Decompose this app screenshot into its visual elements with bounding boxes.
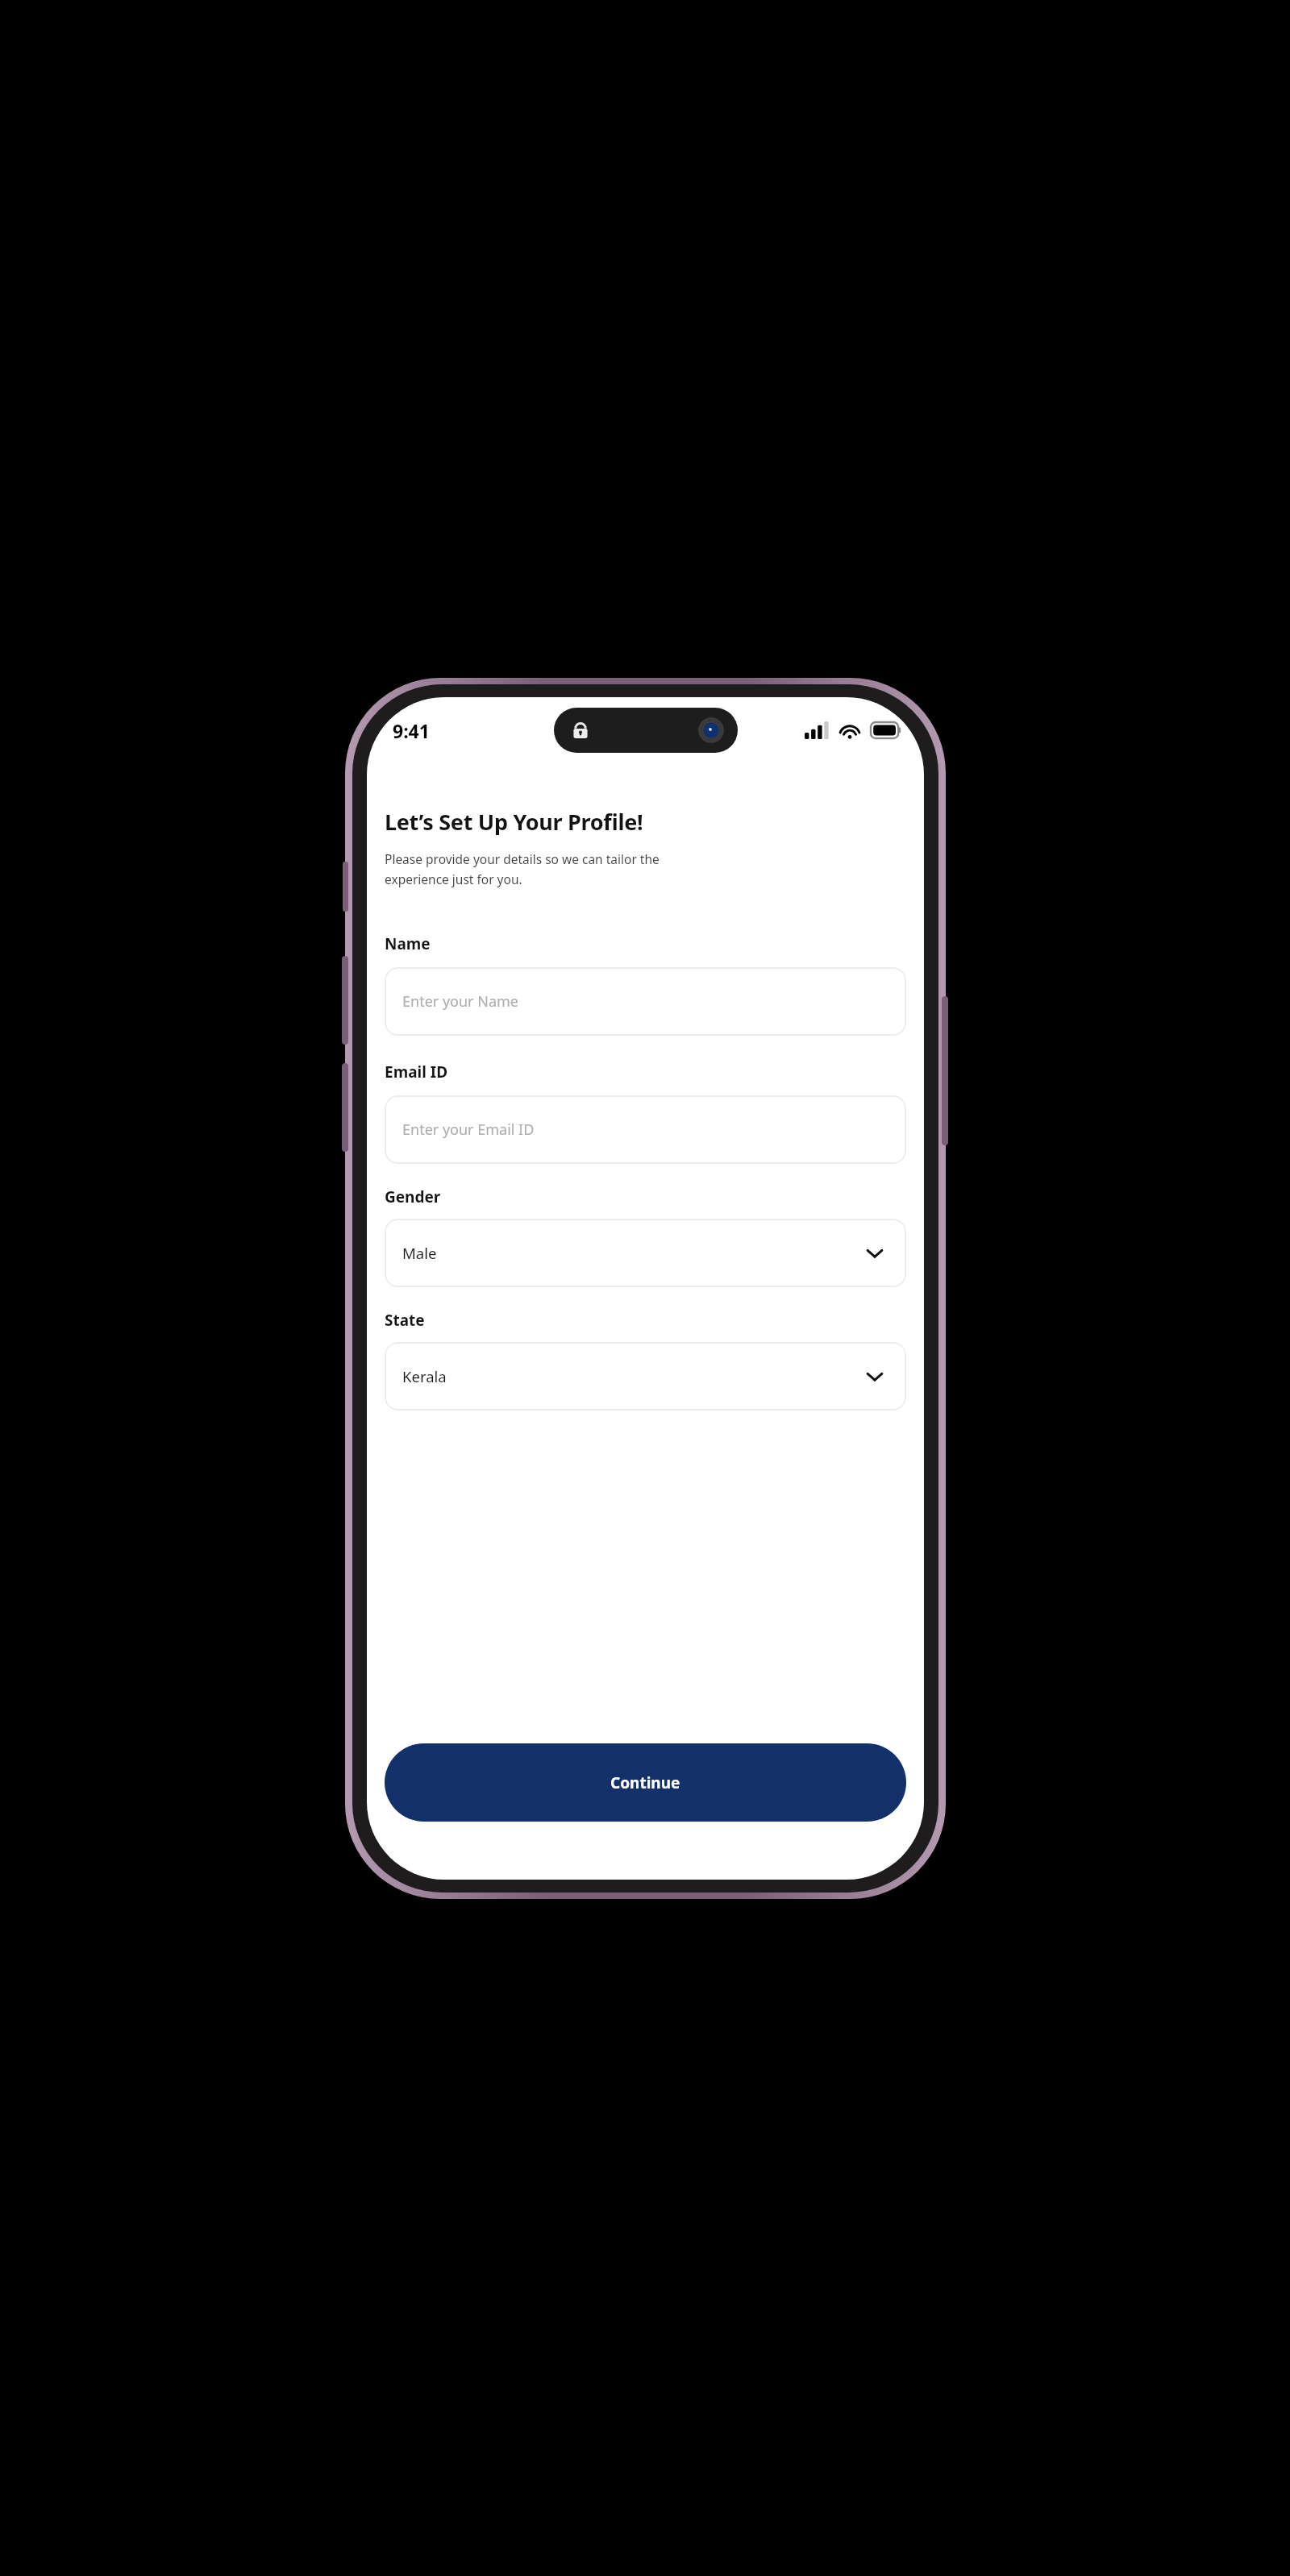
staticText: State: [385, 1310, 425, 1331]
staticText: 9:41: [393, 718, 430, 743]
staticText: Male: [402, 1243, 864, 1263]
staticText: Email ID: [385, 1062, 448, 1082]
button[interactable]: Continue: [385, 1743, 906, 1822]
staticText: Kerala: [402, 1366, 864, 1386]
staticText: Name: [385, 933, 431, 954]
staticText: Let’s Set Up Your Profile!: [385, 807, 643, 837]
other: Expand dropdown: [864, 1243, 885, 1264]
button[interactable]: Enter your Name: [385, 967, 906, 1036]
staticText: Please provide your details so we can ta…: [385, 850, 660, 888]
staticText: Enter your Name: [402, 991, 518, 1012]
staticText: Gender: [385, 1186, 441, 1207]
staticText: Enter your Email ID: [402, 1120, 535, 1140]
button[interactable]: Enter your Email ID: [385, 1095, 906, 1164]
button[interactable]: Male: [385, 1219, 906, 1287]
other: Expand dropdown: [864, 1366, 885, 1387]
button[interactable]: Kerala: [385, 1342, 906, 1411]
staticText: Continue: [610, 1772, 680, 1793]
